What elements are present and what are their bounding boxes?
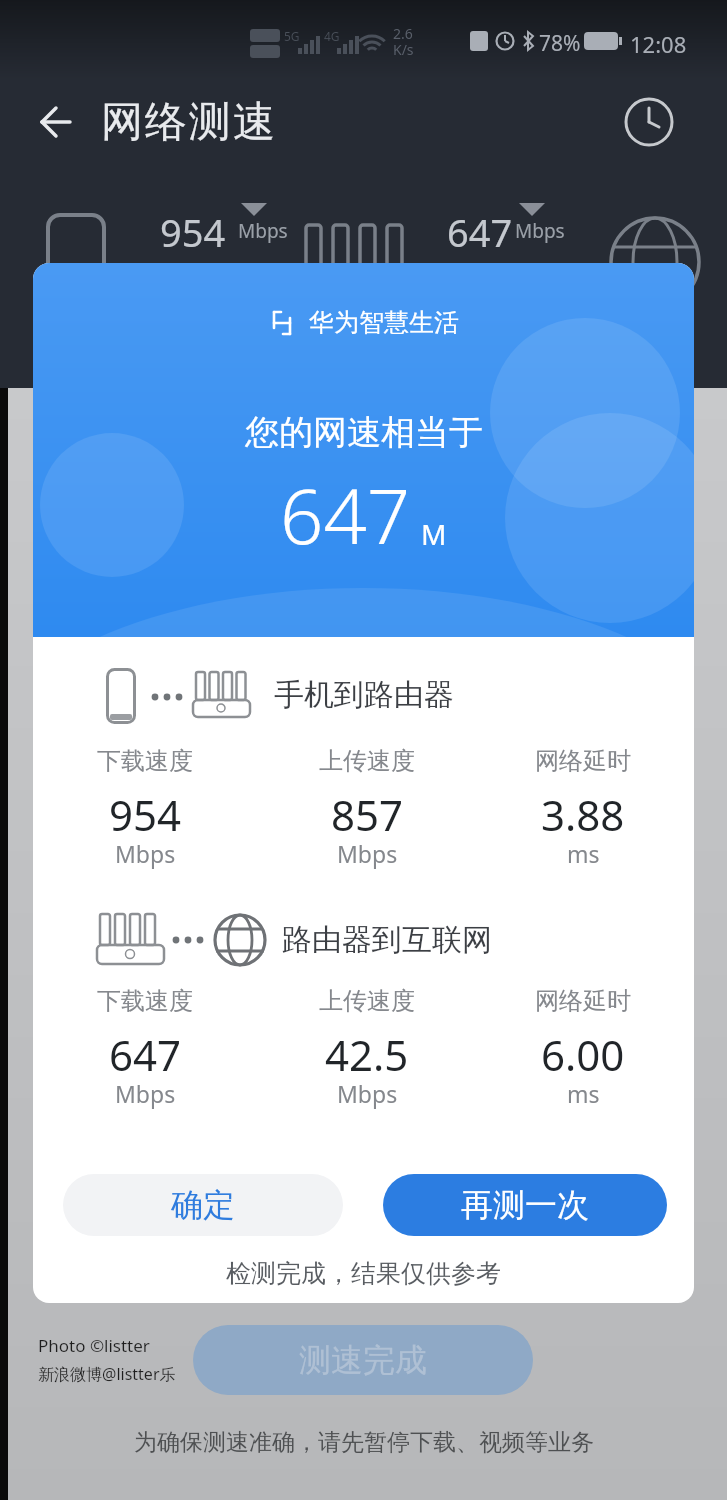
staticText: 上传速度: [319, 986, 415, 1016]
staticText: 2.6 K/s: [393, 24, 414, 59]
staticText: 网络延时: [535, 746, 631, 776]
staticText: 647: [109, 1026, 182, 1083]
staticText: 78%: [539, 29, 581, 58]
staticText: 网络测速: [100, 96, 276, 149]
staticText: 4G: [324, 28, 340, 44]
staticText: Mbps: [337, 1078, 398, 1109]
staticText: 确定: [171, 1185, 235, 1225]
staticText: Mbps: [337, 838, 398, 869]
staticText: 新浪微博@listter乐: [38, 1363, 176, 1385]
staticText: 647: [280, 463, 411, 567]
button[interactable]: 测速完成: [193, 1325, 533, 1395]
staticText: 下载速度: [97, 986, 193, 1016]
staticText: 您的网速相当于: [245, 411, 483, 454]
staticText: 6.00: [541, 1026, 625, 1083]
button[interactable]: 确定: [63, 1174, 343, 1236]
staticText: 下载速度: [97, 746, 193, 776]
staticText: 网络延时: [535, 986, 631, 1016]
staticText: Mbps: [515, 218, 565, 244]
staticText: 为确保测速准确，请先暂停下载、视频等业务: [134, 1428, 594, 1457]
staticText: 857: [331, 786, 404, 843]
staticText: 上传速度: [319, 746, 415, 776]
staticText: 手机到路由器: [274, 676, 454, 714]
staticText: ms: [567, 838, 600, 869]
staticText: Mbps: [115, 1078, 176, 1109]
staticText: 954: [109, 786, 182, 843]
staticText: 测速完成: [299, 1340, 427, 1380]
button[interactable]: 再测一次: [383, 1174, 667, 1236]
button[interactable]: [28, 94, 84, 150]
staticText: 647: [447, 206, 513, 258]
staticText: 42.5: [325, 1026, 409, 1083]
staticText: 路由器到互联网: [282, 921, 492, 959]
staticText: ms: [567, 1078, 600, 1109]
staticText: 3.88: [541, 786, 625, 843]
staticText: Mbps: [238, 218, 288, 244]
staticText: 954: [160, 206, 226, 258]
staticText: Photo ©listter: [38, 1334, 150, 1357]
staticText: 12:08: [630, 29, 687, 59]
staticText: 再测一次: [461, 1185, 589, 1225]
button[interactable]: [622, 95, 676, 149]
staticText: 华为智慧生活: [309, 307, 459, 338]
staticText: 检测完成，结果仅供参考: [226, 1258, 501, 1289]
staticText: M: [421, 515, 447, 553]
staticText: Mbps: [115, 838, 176, 869]
staticText: 5G: [284, 28, 300, 44]
